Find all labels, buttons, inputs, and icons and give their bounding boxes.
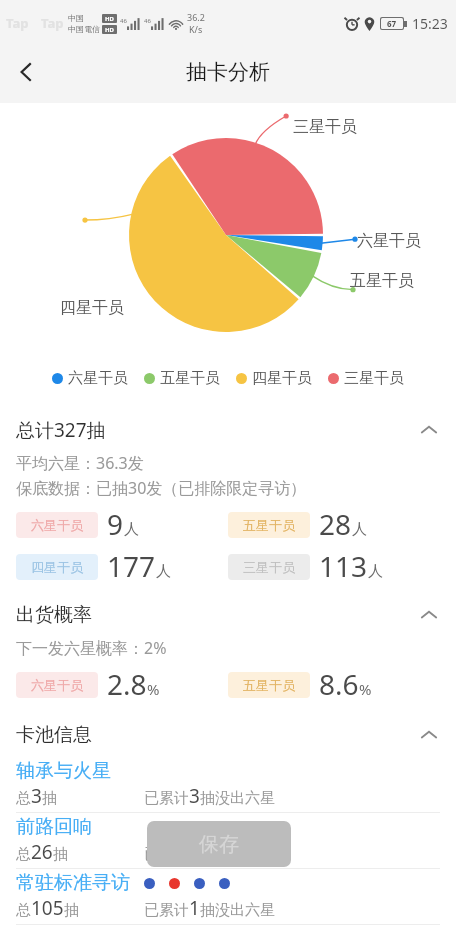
button[interactable]: 五星干员 bbox=[228, 505, 367, 543]
staticText: Tap bbox=[41, 14, 64, 32]
button[interactable]: 五星干员 bbox=[141, 369, 223, 388]
staticText: 轴承与火星 bbox=[16, 759, 111, 783]
staticText: 2.8 bbox=[107, 665, 147, 703]
button[interactable]: 返回 bbox=[0, 46, 52, 98]
staticText: 人 bbox=[368, 562, 383, 581]
staticText: 177 bbox=[107, 547, 156, 585]
staticText: 36.2 bbox=[187, 11, 205, 23]
button[interactable]: 六星干员 bbox=[16, 505, 139, 543]
staticText: 105 bbox=[31, 895, 64, 921]
staticText: 五星干员 bbox=[243, 517, 295, 533]
staticText: HD bbox=[105, 15, 114, 23]
staticText: 五星干员 bbox=[350, 271, 414, 291]
staticText: 下一发六星概率：2% bbox=[16, 637, 167, 659]
staticText: 3 bbox=[31, 783, 42, 809]
staticText: 已累计 bbox=[144, 901, 189, 920]
staticText: % bbox=[359, 679, 372, 699]
staticText: 抽没出六星 bbox=[211, 845, 286, 864]
button[interactable]: 卡池信息 bbox=[0, 713, 456, 757]
button[interactable]: 出货概率 bbox=[0, 593, 456, 637]
staticText: 中国 bbox=[68, 13, 84, 23]
staticText: 抽 bbox=[64, 901, 79, 920]
staticText: 已累计 bbox=[144, 789, 189, 808]
staticText: 常驻标准寻访 bbox=[16, 871, 130, 895]
staticText: 1 bbox=[189, 895, 200, 921]
button[interactable]: 前路回响 bbox=[0, 815, 456, 869]
staticText: 三星干员 bbox=[293, 117, 357, 137]
staticText: 总 bbox=[16, 789, 31, 808]
staticText: 113 bbox=[319, 547, 368, 585]
staticText: 三星干员 bbox=[344, 369, 404, 388]
staticText: 五星干员 bbox=[160, 369, 220, 388]
staticText: 四星干员 bbox=[252, 369, 312, 388]
staticText: 已累计 bbox=[144, 845, 189, 864]
staticText: 26 bbox=[189, 839, 211, 865]
staticText: 人 bbox=[156, 562, 171, 581]
staticText: 卡池信息 bbox=[16, 723, 92, 747]
staticText: 保存 bbox=[199, 832, 239, 857]
staticText: 六星干员 bbox=[31, 677, 83, 693]
staticText: 28 bbox=[319, 505, 352, 543]
staticText: 46 bbox=[144, 17, 151, 25]
button[interactable]: 四星干员 bbox=[16, 547, 171, 585]
staticText: Tap bbox=[6, 14, 29, 32]
staticText: 六星干员 bbox=[68, 369, 128, 388]
staticText: 15:23 bbox=[412, 14, 448, 33]
staticText: 67 bbox=[387, 18, 397, 29]
staticText: 人 bbox=[124, 520, 139, 539]
staticText: 六星干员 bbox=[357, 231, 421, 251]
staticText: 总 bbox=[16, 901, 31, 920]
staticText: K/s bbox=[189, 23, 203, 35]
staticText: 四星干员 bbox=[31, 559, 83, 575]
button[interactable]: 六星干员 bbox=[16, 665, 160, 703]
staticText: % bbox=[147, 679, 160, 699]
staticText: 抽没出六星 bbox=[200, 901, 275, 920]
staticText: 出货概率 bbox=[16, 603, 92, 627]
staticText: 三星干员 bbox=[243, 559, 295, 575]
button[interactable]: 四星干员 bbox=[233, 369, 315, 388]
staticText: 抽 bbox=[53, 845, 68, 864]
staticText: 3 bbox=[189, 783, 200, 809]
button[interactable]: 轴承与火星 bbox=[0, 759, 456, 813]
staticText: 总计327抽 bbox=[16, 417, 106, 443]
staticText: 平均六星：36.3发 bbox=[16, 452, 144, 474]
staticText: 抽没出六星 bbox=[200, 789, 275, 808]
button[interactable]: 总计327抽 bbox=[0, 408, 456, 452]
button[interactable]: 五星干员 bbox=[228, 665, 372, 703]
button[interactable]: 三星干员 bbox=[228, 547, 383, 585]
staticText: 26 bbox=[31, 839, 53, 865]
staticText: 总 bbox=[16, 845, 31, 864]
button[interactable]: 三星干员 bbox=[325, 369, 407, 388]
button[interactable]: 六星干员 bbox=[49, 369, 131, 388]
staticText: 前路回响 bbox=[16, 815, 92, 839]
staticText: 五星干员 bbox=[243, 677, 295, 693]
staticText: 8.6 bbox=[319, 665, 359, 703]
staticText: 人 bbox=[352, 520, 367, 539]
staticText: 9 bbox=[107, 505, 124, 543]
staticText: HD bbox=[105, 26, 114, 34]
button[interactable]: 常驻标准寻访 bbox=[0, 871, 456, 925]
staticText: 46 bbox=[120, 17, 127, 25]
staticText: 保底数据：已抽30发（已排除限定寻访） bbox=[16, 477, 307, 499]
staticText: 抽卡分析 bbox=[186, 59, 270, 85]
staticText: 六星干员 bbox=[31, 517, 83, 533]
staticText: 抽 bbox=[42, 789, 57, 808]
staticText: 中国電信 bbox=[68, 24, 100, 34]
staticText: 四星干员 bbox=[60, 298, 124, 318]
